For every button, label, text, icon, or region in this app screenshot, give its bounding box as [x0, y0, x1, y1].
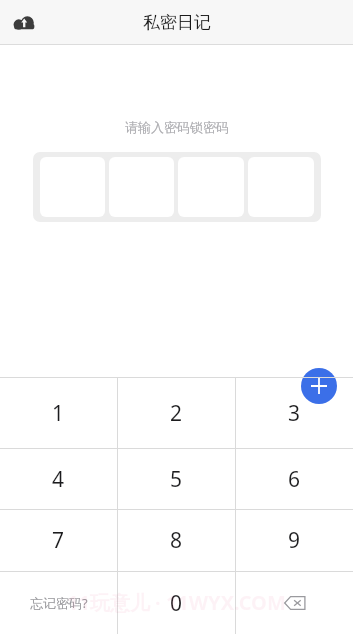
staticText: 请输入密码锁密码	[125, 119, 229, 135]
button[interactable]: 5	[118, 449, 235, 509]
staticText: 忘记密码?	[30, 594, 88, 612]
button[interactable]: 2	[118, 378, 235, 448]
staticText: 1	[52, 399, 65, 428]
staticText: 2	[170, 399, 183, 428]
staticText: 11玩意儿 · 11WYX.COM	[67, 589, 286, 616]
button[interactable]: 8	[118, 510, 235, 571]
staticText: 3	[288, 399, 301, 428]
button[interactable]: 9	[236, 510, 353, 571]
button[interactable]: Backup to cloud	[8, 6, 42, 40]
staticText: 8	[170, 526, 183, 555]
staticText: 7	[52, 526, 65, 555]
staticText: 5	[170, 465, 183, 494]
staticText: 私密日记	[143, 12, 211, 33]
button[interactable]: Delete	[236, 572, 353, 634]
staticText: 0	[170, 589, 183, 618]
staticText: 4	[52, 465, 65, 494]
button[interactable]: 6	[236, 449, 353, 509]
button[interactable]: 1	[0, 378, 117, 448]
staticText: 9	[288, 526, 301, 555]
button[interactable]	[38, 157, 316, 217]
staticText: 6	[288, 465, 301, 494]
button[interactable]: 4	[0, 449, 117, 509]
button[interactable]: 7	[0, 510, 117, 571]
button[interactable]: 3	[236, 378, 353, 448]
button[interactable]: 忘记密码?	[0, 572, 117, 634]
button[interactable]: Add diary entry	[301, 368, 337, 404]
button[interactable]: 0	[118, 572, 235, 634]
